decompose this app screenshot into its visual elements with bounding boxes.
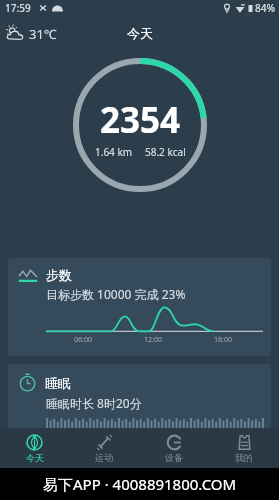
staticText: 目标步数 10000 完成 23% xyxy=(46,286,186,302)
button[interactable]: 今天 xyxy=(0,428,69,468)
staticText: 12:00 xyxy=(144,335,162,345)
staticText: 设备 xyxy=(165,452,183,463)
staticText: 易下APP · 4008891800.COM xyxy=(43,474,237,494)
button[interactable]: Daily step progress 2354 steps xyxy=(73,58,207,192)
button[interactable]: 我的 xyxy=(209,428,279,468)
button[interactable]: 31℃ xyxy=(5,23,57,44)
staticText: 我的 xyxy=(235,452,253,463)
staticText: 06:00 xyxy=(74,335,92,345)
staticText: 1.64 km xyxy=(95,145,133,159)
staticText: 今天 xyxy=(127,25,153,41)
button[interactable]: 设备 xyxy=(139,428,209,468)
button[interactable]: 步数 xyxy=(8,258,271,356)
staticText: 31℃ xyxy=(29,25,57,43)
staticText: 今天 xyxy=(26,452,44,463)
button[interactable]: 运动 xyxy=(69,428,139,468)
staticText: 运动 xyxy=(95,452,113,463)
staticText: 18:00 xyxy=(214,335,232,345)
button[interactable]: 睡眠 xyxy=(8,364,271,430)
staticText: 睡眠 xyxy=(45,375,71,391)
staticText: 17:59 xyxy=(5,1,31,15)
staticText: 84% xyxy=(255,1,275,15)
staticText: 睡眠时长 8时20分 xyxy=(46,395,142,411)
staticText: 2354 xyxy=(100,96,181,144)
staticText: 58.2 kcal xyxy=(145,145,186,159)
staticText: 步数 xyxy=(46,267,72,283)
